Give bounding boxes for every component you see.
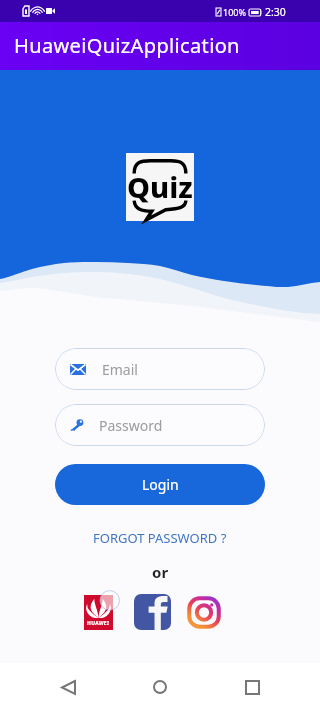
button[interactable]: Email [55,348,265,390]
staticText: HuaweiQuizApplication [14,32,240,59]
staticText: Password [99,416,163,435]
staticText: HUAWEI [87,620,110,627]
staticText: FORGOT PASSWORD ? [93,529,227,547]
button[interactable]: FORGOT PASSWORD ? [87,525,233,551]
button[interactable]: Recents [228,663,276,711]
button[interactable]: Sign in with Facebook [134,594,171,630]
button[interactable]: Login [55,464,265,505]
staticText: Login [142,475,179,494]
staticText: or [152,562,169,582]
staticText: Quiz [127,167,193,206]
button[interactable]: Sign in with Huawei [84,595,113,630]
button[interactable]: Password [55,404,265,446]
button[interactable]: Sign in with Instagram [186,595,222,630]
staticText: Email [102,360,138,379]
staticText: 100% [223,6,246,18]
staticText: 2:30 [265,5,286,19]
button[interactable]: Home [136,663,184,711]
button[interactable]: Back [44,663,92,711]
